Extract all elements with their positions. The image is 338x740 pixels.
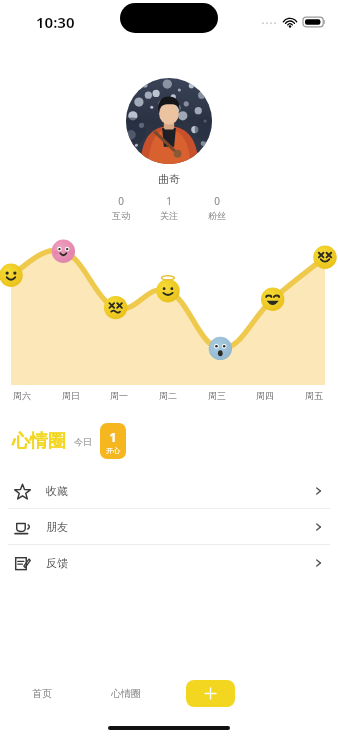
button[interactable]: 0	[104, 194, 138, 221]
staticText: 周三	[208, 390, 226, 401]
button[interactable]: Add mood	[186, 680, 235, 707]
button[interactable]: 收藏	[0, 473, 338, 508]
staticText: 互动	[112, 210, 130, 221]
staticText: 周日	[62, 390, 80, 401]
staticText: 10:30	[36, 12, 75, 32]
staticText: 朋友	[46, 520, 312, 534]
button[interactable]: 反馈	[0, 545, 338, 580]
staticText: 首页	[32, 687, 52, 700]
staticText: 今日	[74, 436, 92, 447]
staticText: 开心	[106, 446, 120, 455]
staticText: 1	[109, 428, 117, 446]
staticText: 粉丝	[208, 210, 226, 221]
button[interactable]: 0	[200, 194, 234, 221]
button[interactable]: Profile photo	[126, 78, 212, 164]
staticText: 周二	[159, 390, 177, 401]
button[interactable]: 心情圈	[84, 670, 168, 716]
staticText: 周六	[13, 390, 31, 401]
button[interactable]: 首页	[0, 670, 84, 716]
staticText: 心情圈	[111, 687, 141, 700]
button[interactable]: 朋友	[0, 509, 338, 544]
staticText: 周一	[110, 390, 128, 401]
staticText: 周五	[305, 390, 323, 401]
staticText: 关注	[160, 210, 178, 221]
staticText: 反馈	[46, 556, 312, 570]
staticText: 周四	[256, 390, 274, 401]
staticText: 心情圈	[12, 430, 66, 453]
staticText: 0	[214, 194, 220, 208]
staticText: 曲奇	[158, 172, 180, 186]
button[interactable]: 1	[152, 194, 186, 221]
staticText: 收藏	[46, 484, 312, 498]
staticText: 1	[166, 194, 172, 208]
button[interactable]: 1	[100, 423, 126, 459]
staticText: 0	[118, 194, 124, 208]
